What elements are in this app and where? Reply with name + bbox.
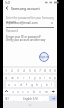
button[interactable]: i: [42, 75, 47, 80]
button[interactable]: d: [18, 82, 24, 87]
staticText: ,: [13, 97, 14, 101]
staticText: d: [20, 83, 22, 87]
staticText: 1: [5, 69, 7, 73]
button[interactable]: Clear: [50, 21, 54, 25]
button[interactable]: f: [24, 82, 29, 87]
staticText: Password: [6, 29, 18, 33]
button[interactable]: 6: [32, 68, 37, 73]
staticText: English (US): [23, 97, 38, 101]
staticText: t: [29, 76, 30, 80]
staticText: e: [17, 76, 19, 80]
staticText: w: [11, 76, 14, 80]
button[interactable]: z: [10, 89, 15, 94]
staticText: 3: [17, 69, 19, 73]
staticText: s: [14, 83, 16, 87]
staticText: !#1: [5, 97, 9, 101]
staticText: x: [17, 90, 19, 94]
staticText: n: [39, 90, 41, 94]
staticText: f: [26, 83, 27, 87]
button[interactable]: w: [9, 75, 15, 80]
staticText: j: [41, 83, 42, 87]
button[interactable]: 8: [42, 68, 47, 73]
button[interactable]: t: [27, 75, 32, 80]
staticText: 7: [39, 69, 41, 73]
staticText: 5: [29, 69, 31, 73]
button[interactable]: p: [52, 75, 57, 80]
button[interactable]: b: [31, 89, 37, 94]
staticText: 2: [11, 69, 13, 73]
button[interactable]: Verify your account another way: [6, 38, 46, 42]
staticText: 0: [54, 69, 56, 73]
staticText: p: [54, 76, 56, 80]
button[interactable]: y: [32, 75, 37, 80]
staticText: 9: [49, 69, 51, 73]
button[interactable]: !#1: [3, 96, 11, 101]
staticText: u: [39, 76, 41, 80]
button[interactable]: Back: [3, 4, 11, 12]
staticText: Enter the password for your Samsung acco…: [6, 16, 54, 24]
staticText: a: [8, 83, 10, 87]
button[interactable]: 7: [37, 68, 42, 73]
button[interactable]: l: [49, 82, 54, 87]
staticText: l: [51, 83, 52, 87]
staticText: k: [46, 83, 48, 87]
button[interactable]: g: [29, 82, 34, 87]
staticText: 9:41: [5, 1, 11, 5]
button[interactable]: v: [25, 89, 31, 94]
staticText: i: [44, 76, 45, 80]
staticText: Sign in: [40, 55, 49, 59]
button[interactable]: Sign in: [39, 52, 49, 62]
button[interactable]: 1: [3, 68, 9, 73]
button[interactable]: o: [47, 75, 52, 80]
staticText: .: [46, 97, 47, 101]
button[interactable]: m: [43, 89, 49, 94]
button[interactable]: x: [15, 89, 20, 94]
button[interactable]: 9: [47, 68, 52, 73]
button[interactable]: 3: [15, 68, 21, 73]
staticText: c: [22, 90, 24, 94]
button[interactable]: 2: [9, 68, 15, 73]
button[interactable]: h: [34, 82, 39, 87]
button[interactable]: u: [37, 75, 42, 80]
button[interactable]: [49, 96, 57, 101]
button[interactable]: j: [39, 82, 44, 87]
button[interactable]: 4: [21, 68, 27, 73]
button[interactable]: 0: [52, 68, 57, 73]
staticText: 6: [34, 69, 36, 73]
button[interactable]: r: [21, 75, 27, 80]
button[interactable]: k: [44, 82, 49, 87]
staticText: o: [49, 76, 51, 80]
button[interactable]: .: [44, 96, 49, 101]
staticText: myaccount@email.com: [6, 21, 38, 25]
button[interactable]: 5: [27, 68, 32, 73]
button[interactable]: English (US): [16, 96, 44, 101]
staticText: v: [27, 90, 29, 94]
staticText: g: [31, 83, 33, 87]
button[interactable]: [49, 89, 57, 94]
button[interactable]: c: [20, 89, 25, 94]
button[interactable]: Forgot your ID or password?: [6, 35, 41, 39]
staticText: 4: [23, 69, 25, 73]
button[interactable]: e: [15, 75, 21, 80]
staticText: Samsung account: [11, 6, 40, 11]
button[interactable]: ,: [11, 96, 16, 101]
staticText: y: [34, 76, 36, 80]
staticText: r: [23, 76, 25, 80]
button[interactable]: a: [6, 82, 12, 87]
staticText: 8: [44, 69, 46, 73]
staticText: q: [5, 76, 7, 80]
staticText: h: [36, 83, 38, 87]
staticText: z: [12, 90, 14, 94]
staticText: m: [45, 90, 48, 94]
button[interactable]: q: [3, 75, 9, 80]
button[interactable]: n: [37, 89, 43, 94]
button[interactable]: [3, 89, 10, 94]
button[interactable]: s: [12, 82, 18, 87]
staticText: b: [33, 90, 35, 94]
